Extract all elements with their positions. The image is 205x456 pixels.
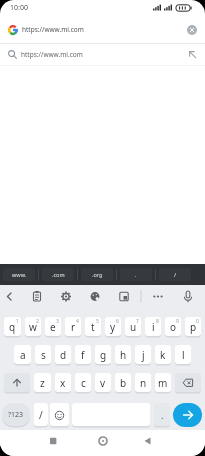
button[interactable]: n xyxy=(135,373,151,393)
button[interactable] xyxy=(72,403,150,427)
button[interactable]: t xyxy=(85,317,101,337)
button[interactable]: www. xyxy=(3,268,35,281)
button[interactable] xyxy=(89,285,118,307)
staticText: s xyxy=(41,348,46,362)
button[interactable]: f xyxy=(75,345,91,365)
button[interactable] xyxy=(188,50,197,59)
button[interactable]: v xyxy=(95,373,111,393)
button[interactable]: e xyxy=(45,317,61,337)
staticText: p xyxy=(190,320,197,334)
staticText: 4 xyxy=(76,318,79,325)
button[interactable]: w xyxy=(25,317,41,337)
button[interactable]: j xyxy=(135,345,151,365)
button[interactable]: o xyxy=(165,317,181,337)
button[interactable]: u xyxy=(125,317,141,337)
button[interactable]: ?123 xyxy=(2,403,30,427)
button[interactable] xyxy=(173,403,202,427)
staticText: / xyxy=(39,408,43,422)
button[interactable] xyxy=(69,430,137,456)
staticText: f xyxy=(81,348,85,362)
button[interactable]: p xyxy=(185,317,201,337)
button[interactable] xyxy=(175,373,201,393)
button[interactable]: m xyxy=(155,373,171,393)
button[interactable]: z xyxy=(34,373,51,393)
button[interactable] xyxy=(50,403,69,427)
staticText: x xyxy=(60,376,66,390)
button[interactable]: https://www.mi.com xyxy=(8,16,197,43)
staticText: .org xyxy=(92,271,103,278)
button[interactable]: h xyxy=(115,345,131,365)
staticText: z xyxy=(40,376,45,390)
button[interactable]: g xyxy=(95,345,111,365)
staticText: h xyxy=(120,348,127,362)
button[interactable]: x xyxy=(55,373,71,393)
button[interactable]: a xyxy=(14,345,31,365)
button[interactable]: k xyxy=(155,345,171,365)
staticText: c xyxy=(81,376,86,390)
staticText: a xyxy=(20,348,26,362)
staticText: g xyxy=(100,348,107,362)
staticText: l xyxy=(182,348,185,362)
button[interactable] xyxy=(187,25,197,35)
staticText: t xyxy=(91,320,95,334)
staticText: 10:00 xyxy=(10,3,28,13)
staticText: 1 xyxy=(16,318,19,325)
button[interactable]: d xyxy=(55,345,71,365)
button[interactable]: l xyxy=(175,345,191,365)
button[interactable] xyxy=(4,373,30,393)
staticText: j xyxy=(142,348,145,362)
button[interactable]: .org xyxy=(81,268,113,281)
staticText: www. xyxy=(12,271,27,278)
staticText: . xyxy=(135,271,137,278)
staticText: m xyxy=(158,376,168,390)
staticText: n xyxy=(140,376,147,390)
staticText: e xyxy=(50,320,56,334)
staticText: / xyxy=(174,271,177,278)
button[interactable]: / xyxy=(34,403,48,427)
staticText: q xyxy=(9,320,16,334)
button[interactable]: . xyxy=(120,268,152,281)
staticText: 7 xyxy=(136,318,139,325)
button[interactable]: r xyxy=(65,317,81,337)
staticText: d xyxy=(60,348,67,362)
staticText: 9 xyxy=(176,318,179,325)
staticText: o xyxy=(170,320,177,334)
button[interactable]: .com xyxy=(42,268,74,281)
staticText: . xyxy=(161,409,164,421)
button[interactable]: y xyxy=(105,317,121,337)
button[interactable]: q xyxy=(4,317,21,337)
staticText: r xyxy=(71,320,76,334)
staticText: 0 xyxy=(196,318,199,325)
staticText: 6 xyxy=(116,318,119,325)
staticText: y xyxy=(110,320,116,334)
button[interactable] xyxy=(0,285,30,307)
button[interactable] xyxy=(147,285,176,307)
button[interactable]: s xyxy=(35,345,51,365)
staticText: https://www.mi.com xyxy=(21,50,83,59)
button[interactable]: i xyxy=(145,317,161,337)
staticText: k xyxy=(160,348,166,362)
staticText: 3 xyxy=(56,318,59,325)
staticText: 2 xyxy=(36,318,39,325)
button[interactable] xyxy=(30,285,60,307)
staticText: u xyxy=(130,320,137,334)
staticText: i xyxy=(152,320,155,334)
button[interactable]: https://www.mi.com xyxy=(8,44,197,65)
staticText: w xyxy=(29,320,37,334)
button[interactable]: / xyxy=(159,268,191,281)
staticText: 8 xyxy=(156,318,159,325)
staticText: ?123 xyxy=(8,410,24,420)
button[interactable] xyxy=(137,430,205,456)
staticText: .com xyxy=(52,271,65,278)
staticText: b xyxy=(120,376,127,390)
button[interactable]: c xyxy=(75,373,91,393)
button[interactable] xyxy=(0,430,69,456)
button[interactable] xyxy=(118,285,147,307)
button[interactable]: . xyxy=(154,403,170,427)
button[interactable]: b xyxy=(115,373,131,393)
staticText: https://www.mi.com xyxy=(22,25,84,34)
button[interactable] xyxy=(176,285,205,307)
staticText: 5 xyxy=(96,318,99,325)
button[interactable] xyxy=(60,285,89,307)
staticText: v xyxy=(100,376,106,390)
